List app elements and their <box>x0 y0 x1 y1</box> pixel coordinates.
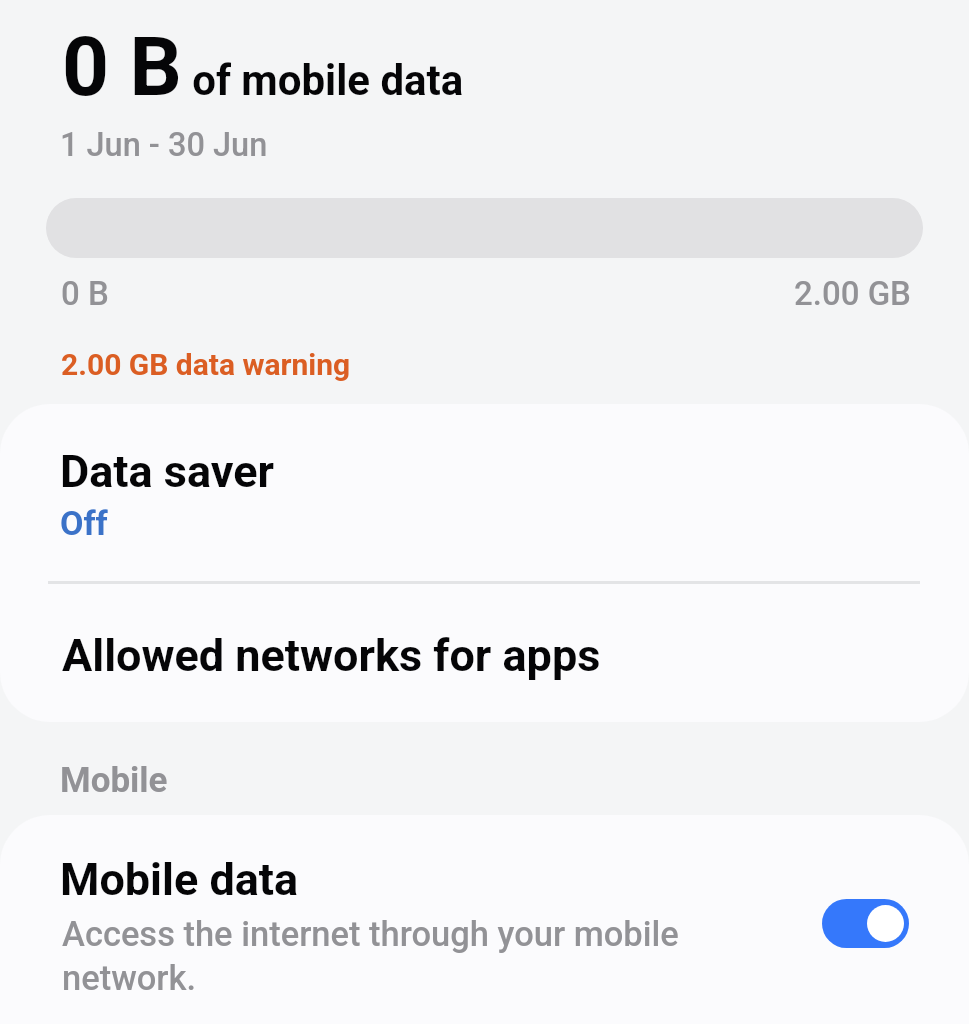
staticText: Off <box>60 503 108 543</box>
staticText: Access the internet through your mobile … <box>62 914 702 998</box>
staticText: 0 B <box>61 274 109 313</box>
staticText: 2.00 GB data warning <box>61 347 351 382</box>
staticText: Mobile data <box>60 853 299 906</box>
staticText: Data saver <box>60 445 274 498</box>
staticText: 2.00 GB <box>794 274 911 313</box>
staticText: 0 B of mobile data <box>62 19 464 115</box>
staticText: 1 Jun - 30 Jun <box>60 126 268 164</box>
button[interactable]: Data saver <box>0 404 969 581</box>
button[interactable]: Mobile data <box>0 815 969 1024</box>
staticText: Mobile <box>60 760 168 801</box>
button[interactable]: Mobile data, on <box>822 899 909 948</box>
button[interactable]: Allowed networks for apps <box>0 584 969 722</box>
staticText: Allowed networks for apps <box>62 629 601 682</box>
